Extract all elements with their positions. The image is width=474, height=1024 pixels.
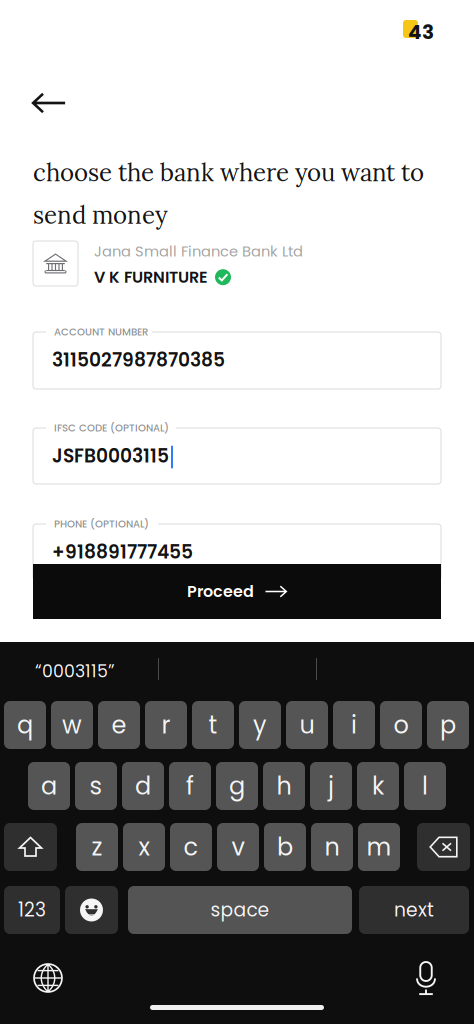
staticText: e [111,708,126,742]
button[interactable]: k [357,762,399,810]
staticText: x [138,830,149,864]
button[interactable]: Next keyboard [25,955,71,1001]
staticText: k [372,769,384,803]
button[interactable]: j [310,762,352,810]
staticText: n [324,830,339,864]
button[interactable]: u [286,701,328,749]
button[interactable]: w [51,701,93,749]
staticText: r [161,708,170,742]
button[interactable]: 123 [4,886,60,934]
button[interactable]: s [75,762,117,810]
button[interactable]: m [358,823,400,871]
button[interactable]: d [122,762,164,810]
staticText: d [135,769,151,803]
staticText: l [422,769,428,803]
button[interactable]: Emoji [65,886,118,934]
staticText: u [299,708,314,742]
staticText: a [41,769,57,803]
button[interactable]: Proceed [33,564,441,619]
button[interactable]: Back [10,81,88,125]
staticText: s [89,769,102,803]
staticText: 43 [408,18,434,46]
button[interactable]: q [4,701,46,749]
staticText: w [62,708,82,742]
staticText: c [183,830,198,864]
staticText: Proceed [187,580,254,603]
button[interactable]: f [169,762,211,810]
button[interactable]: v [217,823,259,871]
staticText: ACCOUNT NUMBER [54,325,148,339]
button[interactable]: z [76,823,118,871]
button[interactable]: b [264,823,306,871]
button[interactable]: space [128,886,352,934]
button[interactable]: p [427,701,469,749]
staticText: 3115027987870385 [52,347,225,373]
button[interactable]: y [239,701,281,749]
button[interactable]: t [192,701,234,749]
staticText: j [328,769,334,803]
button[interactable]: r [145,701,187,749]
staticText: h [276,769,291,803]
staticText: V K FURNITURE [94,266,208,288]
button[interactable]: e [98,701,140,749]
staticText: b [277,830,293,864]
button[interactable]: Delete [417,823,470,871]
staticText: f [186,769,194,803]
staticText: g [229,769,245,803]
button[interactable]: c [170,823,212,871]
staticText: Jana Small Finance Bank Ltd [94,241,303,261]
button[interactable]: Dictate [403,955,449,1001]
button[interactable]: next [359,886,469,934]
button[interactable]: n [311,823,353,871]
staticText: PHONE (OPTIONAL) [54,517,149,531]
staticText: v [231,830,244,864]
staticText: JSFB0003115 [52,443,169,469]
button[interactable]: a [28,762,70,810]
staticText: y [253,708,267,742]
staticText: m [366,830,391,864]
staticText: z [91,830,102,864]
staticText: q [17,708,33,742]
staticText: +918891777455 [52,539,193,565]
button[interactable]: Shift [4,823,57,871]
staticText: space [210,897,269,923]
button[interactable]: h [263,762,305,810]
staticText: p [440,708,456,742]
staticText: o [393,708,408,742]
button[interactable]: l [404,762,446,810]
button[interactable]: g [216,762,258,810]
staticText: “0003115” [35,659,115,683]
staticText: IFSC CODE (OPTIONAL) [54,421,169,435]
button[interactable]: x [123,823,165,871]
staticText: 123 [18,897,46,923]
button[interactable]: i [333,701,375,749]
staticText: choose the bank where you want to send m… [33,157,424,230]
staticText: i [351,708,357,742]
button[interactable]: o [380,701,422,749]
staticText: t [208,708,217,742]
staticText: next [394,897,434,923]
